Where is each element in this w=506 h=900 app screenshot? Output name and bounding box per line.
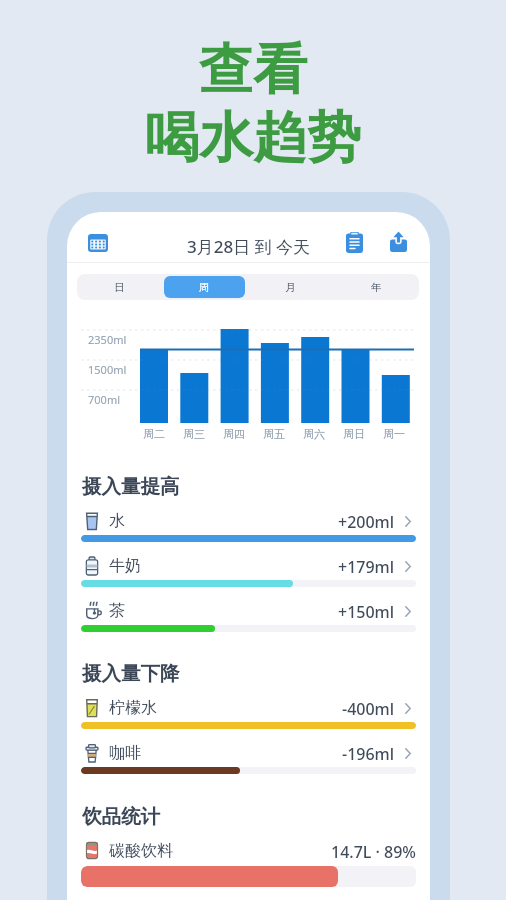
staticText: -196ml (342, 743, 395, 763)
staticText: 查看 (0, 36, 506, 104)
staticText: 周二 (143, 427, 165, 441)
staticText: -400ml (342, 698, 395, 718)
staticText: 3月28日 到 今天 (67, 235, 430, 258)
staticText: +150ml (338, 601, 395, 621)
staticText: 1500ml (88, 362, 127, 377)
button[interactable]: Share (390, 231, 407, 252)
staticText: 2350ml (88, 332, 127, 347)
staticText: 碳酸饮料 (109, 841, 173, 860)
button[interactable]: Calendar (88, 234, 108, 252)
button[interactable]: 周 (164, 276, 245, 298)
staticText: 喝水趋势 (0, 104, 506, 172)
staticText: 茶 (109, 601, 125, 621)
staticText: 饮品统计 (82, 804, 160, 829)
staticText: 周六 (303, 427, 325, 441)
button[interactable]: Report (346, 232, 363, 253)
button[interactable]: 茶 (67, 601, 430, 632)
staticText: 摄入量下降 (82, 661, 180, 686)
button[interactable]: 水 (67, 511, 430, 542)
button[interactable]: 月 (249, 276, 331, 298)
button[interactable]: 日 (79, 276, 160, 298)
staticText: 水 (109, 511, 125, 531)
staticText: 柠檬水 (109, 698, 157, 718)
staticText: +179ml (338, 556, 395, 576)
button[interactable]: 牛奶 (67, 556, 430, 587)
staticText: +200ml (338, 511, 395, 531)
button[interactable]: 咖啡 (67, 743, 430, 774)
staticText: 咖啡 (109, 743, 141, 763)
staticText: 周四 (223, 427, 245, 441)
staticText: 周 (199, 281, 210, 294)
staticText: 年 (371, 281, 382, 294)
button[interactable]: 年 (335, 276, 417, 298)
staticText: 月 (285, 281, 296, 294)
staticText: 日 (114, 281, 125, 294)
staticText: 14.7L · 89% (331, 841, 416, 860)
staticText: 摄入量提高 (82, 474, 180, 499)
staticText: 周五 (263, 427, 285, 441)
button[interactable]: 柠檬水 (67, 698, 430, 729)
button[interactable]: 碳酸饮料 (67, 841, 430, 887)
staticText: 周三 (183, 427, 205, 441)
staticText: 周一 (383, 427, 405, 441)
staticText: 牛奶 (109, 556, 141, 576)
staticText: 700ml (88, 392, 120, 407)
staticText: 周日 (343, 427, 365, 441)
